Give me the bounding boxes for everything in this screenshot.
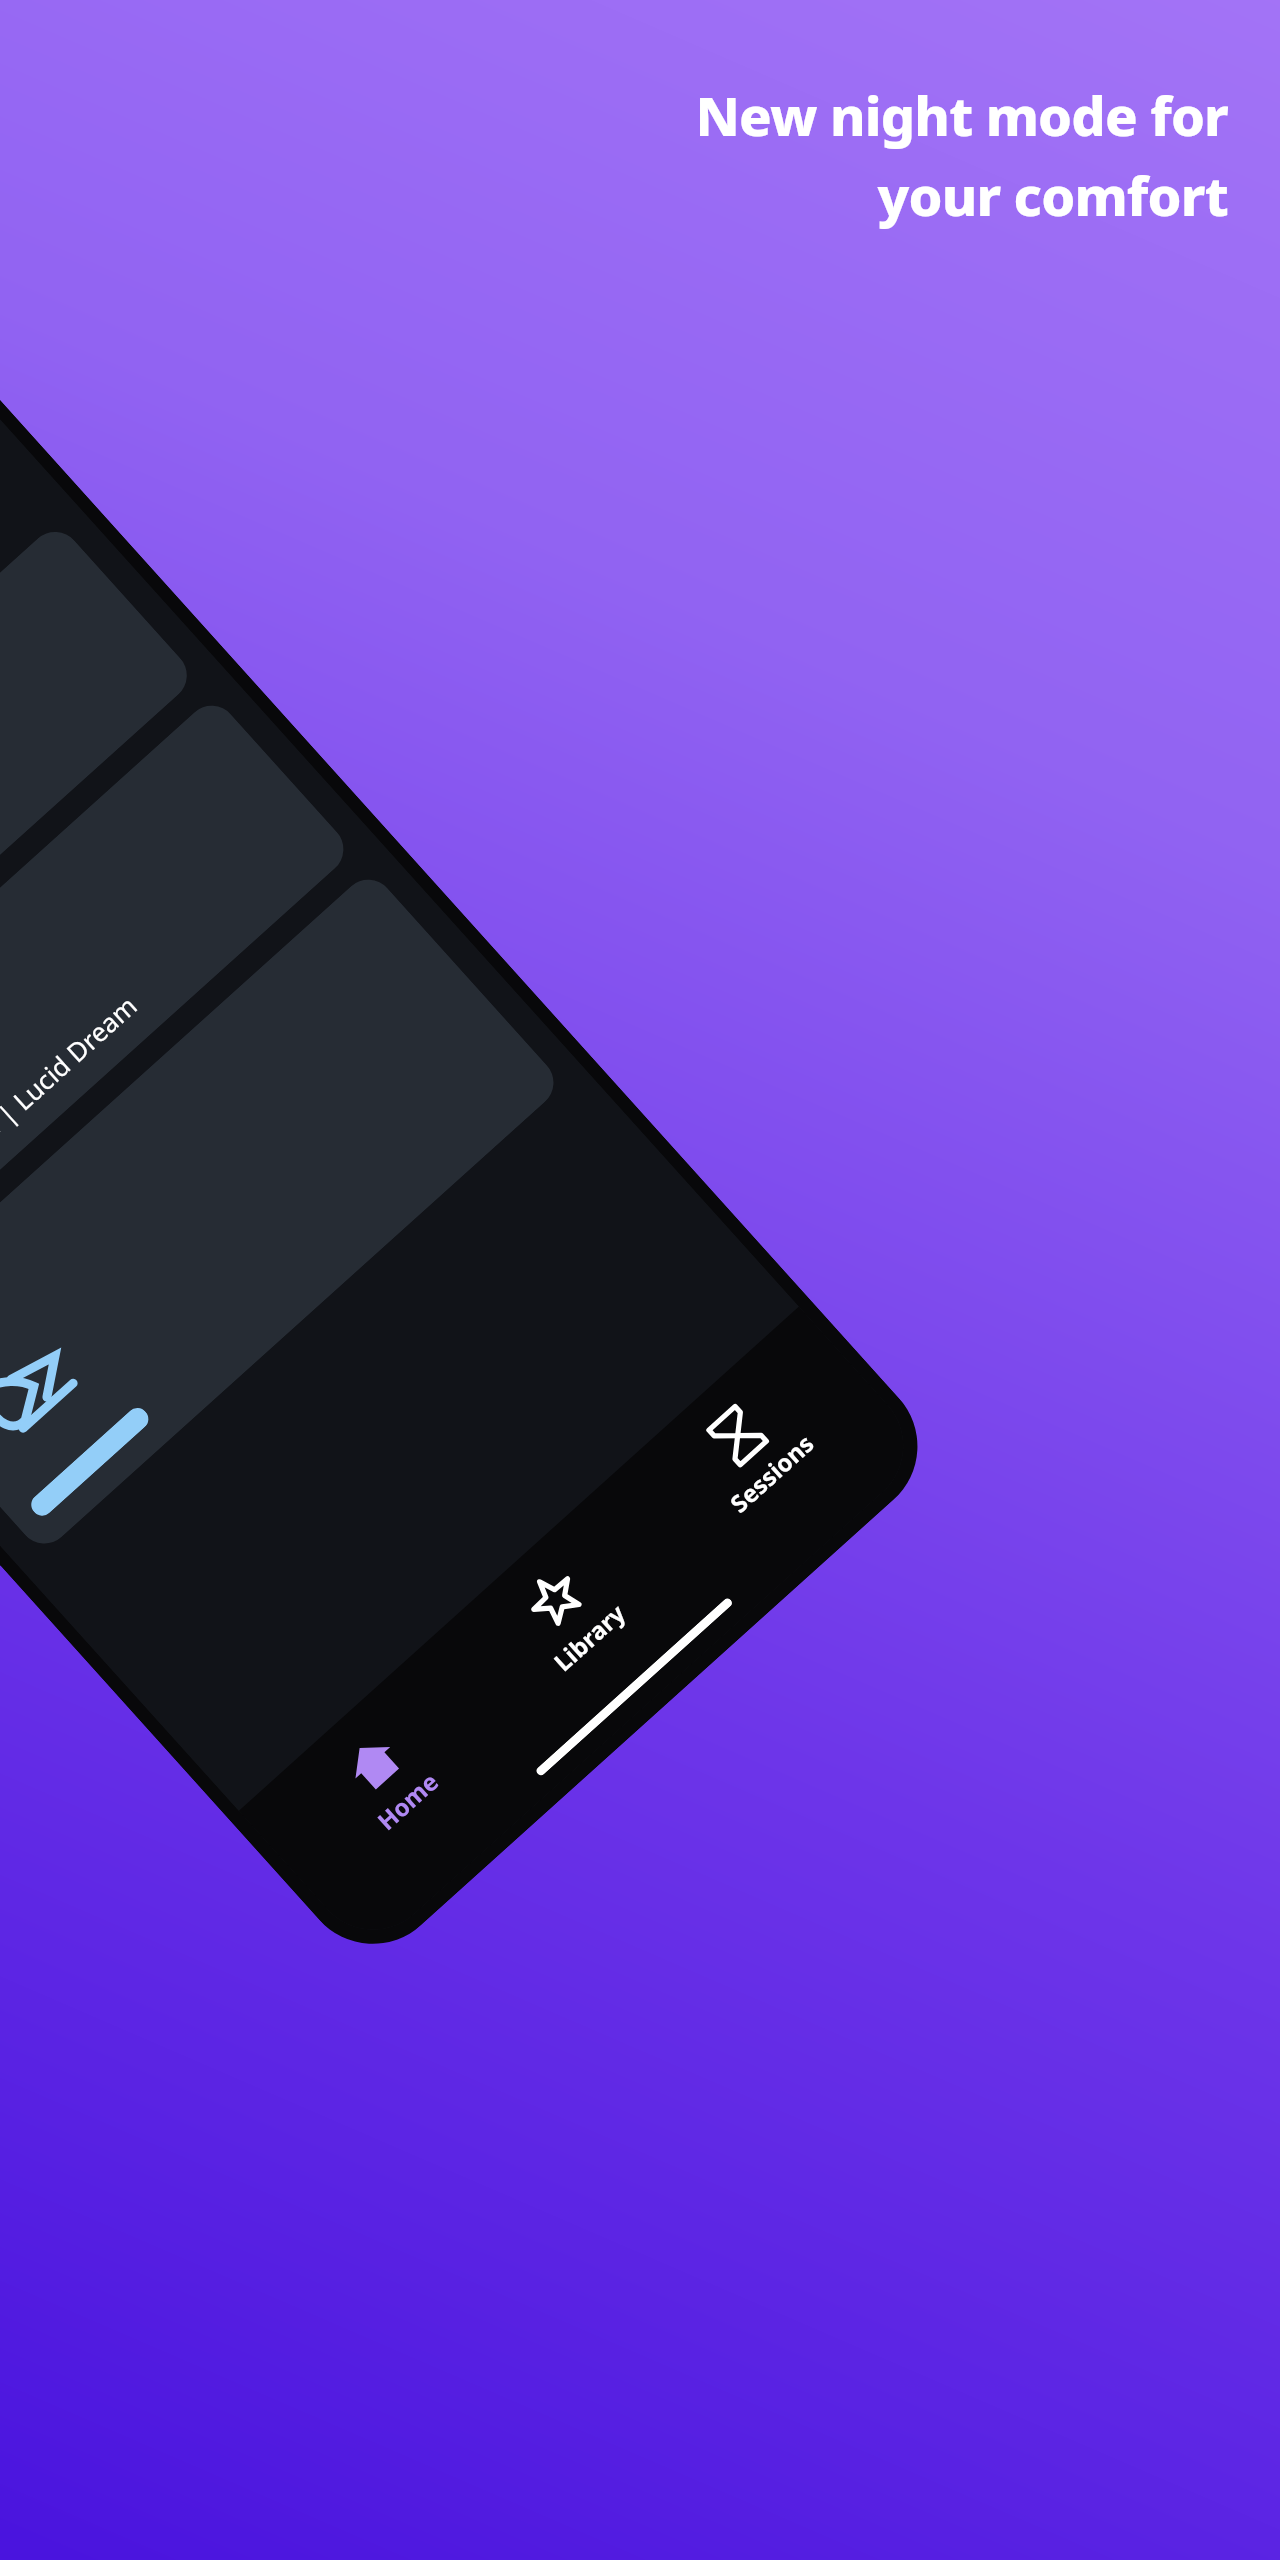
staticText: Sessions [722, 1427, 820, 1520]
staticText: Library [546, 1597, 632, 1678]
button[interactable]: Mantra Chanting | 3rd Eye [0, 521, 198, 1147]
staticText: your comfort [877, 158, 1228, 232]
staticText: Home [369, 1765, 445, 1837]
button[interactable]: Sessions [621, 1326, 881, 1577]
button[interactable]: Library [439, 1490, 699, 1741]
staticText: Theta | Deep Sleep | Lucid Dream [0, 988, 144, 1293]
button[interactable] [0, 869, 564, 1554]
staticText: New night mode for [695, 78, 1228, 152]
other: Home [337, 1727, 410, 1800]
button[interactable]: Theta | Deep Sleep | Lucid Dream [0, 695, 354, 1321]
other: Sessions [701, 1399, 774, 1472]
other: Library [519, 1563, 592, 1636]
button[interactable]: Home [257, 1654, 517, 1904]
